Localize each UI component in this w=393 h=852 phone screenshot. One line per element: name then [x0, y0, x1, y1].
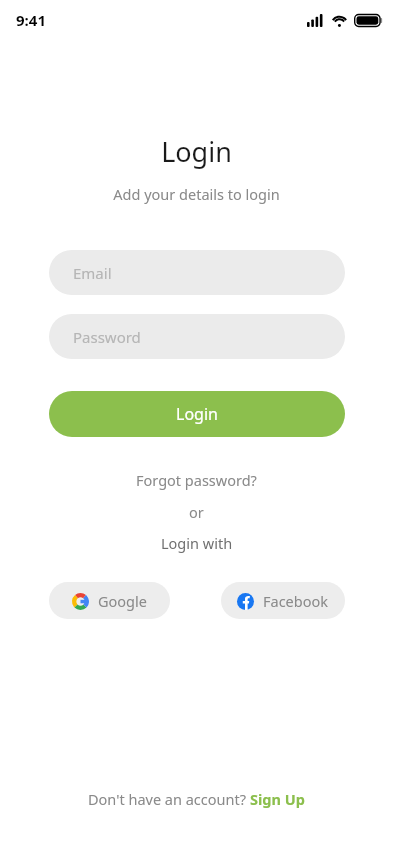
staticText: Forgot password?: [136, 470, 257, 490]
staticText: Add your details to login: [113, 184, 280, 204]
staticText: Login: [176, 403, 218, 425]
staticText: 9:41: [16, 10, 46, 30]
button[interactable]: Password input field: [49, 314, 345, 359]
button[interactable]: Login: [49, 391, 345, 437]
staticText: Don't have an account?: [88, 789, 250, 809]
button[interactable]: Forgot password?: [130, 468, 263, 492]
staticText: Email: [73, 263, 112, 283]
staticText: Sign Up: [250, 789, 305, 809]
button[interactable]: Email input field: [49, 250, 345, 295]
staticText: Password: [73, 327, 141, 347]
staticText: Facebook: [263, 591, 329, 611]
staticText: or: [189, 502, 204, 522]
staticText: Login with: [161, 533, 233, 553]
staticText: Google: [98, 591, 147, 611]
staticText: Login: [161, 133, 232, 170]
button[interactable]: Facebook: [221, 582, 345, 619]
button[interactable]: Google: [49, 582, 170, 619]
button[interactable]: Sign Up: [250, 789, 305, 809]
